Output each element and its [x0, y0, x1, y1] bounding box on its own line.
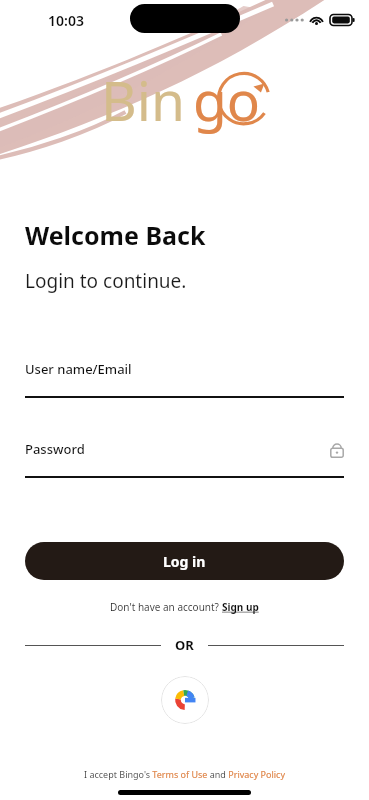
other: Show password — [330, 441, 344, 458]
button[interactable]: Log in — [25, 542, 344, 580]
staticText: Login to continue. — [25, 268, 187, 294]
staticText: OR — [175, 636, 194, 654]
staticText: I accept Bingo's Terms of Use and Privac… — [84, 768, 286, 780]
staticText: go — [193, 62, 261, 137]
button[interactable]: Sign in with Google — [161, 676, 209, 724]
staticText: Welcome Back — [25, 218, 206, 252]
button[interactable]: I accept Bingo's Terms of Use and Privac… — [25, 768, 344, 780]
button[interactable]: User name/Email — [25, 360, 344, 398]
button[interactable]: Don't have an account? — [110, 600, 259, 614]
staticText: Bin — [101, 62, 185, 137]
button[interactable]: Password — [25, 440, 344, 478]
staticText: User name/Email — [25, 360, 132, 378]
staticText: Password — [25, 440, 330, 458]
staticText: Don't have an account? — [110, 600, 222, 614]
staticText: 10:03 — [48, 11, 84, 30]
staticText: Sign up — [222, 600, 259, 614]
staticText: Log in — [163, 552, 206, 571]
